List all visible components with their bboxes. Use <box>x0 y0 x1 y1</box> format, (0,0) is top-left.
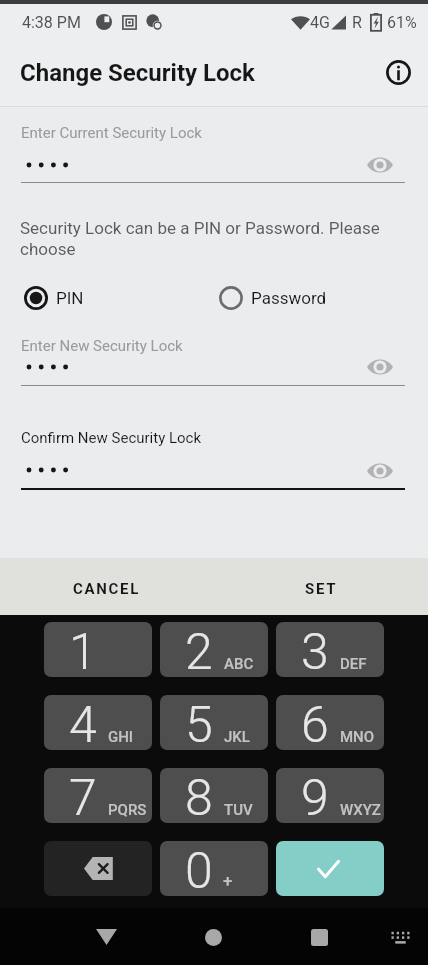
button[interactable] <box>160 841 268 896</box>
staticText: 3 <box>301 623 329 682</box>
button[interactable] <box>44 695 152 750</box>
staticText: 4G <box>310 13 330 32</box>
button[interactable]: SET <box>214 562 428 615</box>
staticText: ABC <box>224 655 254 671</box>
staticText: Password <box>251 288 327 308</box>
staticText: Enter Current Security Lock <box>21 124 202 142</box>
staticText: PQRS <box>108 801 147 817</box>
staticText: R <box>352 13 362 32</box>
staticText: GHI <box>108 728 134 744</box>
staticText: Security Lock can be a PIN or Password. … <box>20 218 380 260</box>
button[interactable]: Recents <box>293 912 346 962</box>
staticText: Change Security Lock <box>20 59 255 87</box>
staticText: DEF <box>340 655 367 671</box>
staticText: PIN <box>56 288 84 308</box>
staticText: TUV <box>224 801 253 817</box>
staticText: JKL <box>224 728 250 744</box>
staticText: 1 <box>69 623 97 682</box>
button[interactable]: Show password <box>366 151 394 179</box>
button[interactable]: Info <box>382 56 414 88</box>
staticText: 0 <box>185 842 213 901</box>
button[interactable] <box>276 768 384 823</box>
staticText: Enter New Security Lock <box>21 337 183 355</box>
staticText: 9 <box>301 769 329 828</box>
button[interactable] <box>160 768 268 823</box>
button[interactable] <box>44 622 152 677</box>
button[interactable] <box>44 768 152 823</box>
button[interactable] <box>160 622 268 677</box>
button[interactable]: Enter <box>276 841 384 896</box>
staticText: CANCEL <box>73 580 141 598</box>
staticText: MNO <box>340 728 375 744</box>
staticText: 61% <box>387 13 417 32</box>
button[interactable] <box>276 622 384 677</box>
button[interactable]: Password <box>219 284 327 312</box>
button[interactable] <box>276 695 384 750</box>
staticText: 4:38 PM <box>22 13 81 32</box>
button[interactable]: Home <box>187 912 240 962</box>
button[interactable] <box>160 695 268 750</box>
staticText: 5 <box>185 696 213 755</box>
staticText: 7 <box>69 769 97 828</box>
button[interactable]: Switch keyboard <box>378 916 422 958</box>
button[interactable]: Show password <box>366 353 394 381</box>
button[interactable]: Hide keyboard <box>80 912 133 962</box>
button[interactable]: CANCEL <box>0 562 214 615</box>
staticText: SET <box>305 580 338 598</box>
staticText: 8 <box>185 769 213 828</box>
staticText: WXYZ <box>340 801 381 817</box>
staticText: 6 <box>301 696 329 755</box>
staticText: Confirm New Security Lock <box>21 429 202 447</box>
staticText: + <box>223 871 233 889</box>
staticText: 2 <box>185 623 213 682</box>
staticText: 4 <box>69 696 97 755</box>
button[interactable]: Backspace <box>44 841 152 896</box>
button[interactable]: PIN <box>24 284 84 312</box>
button[interactable]: Show password <box>366 457 394 485</box>
